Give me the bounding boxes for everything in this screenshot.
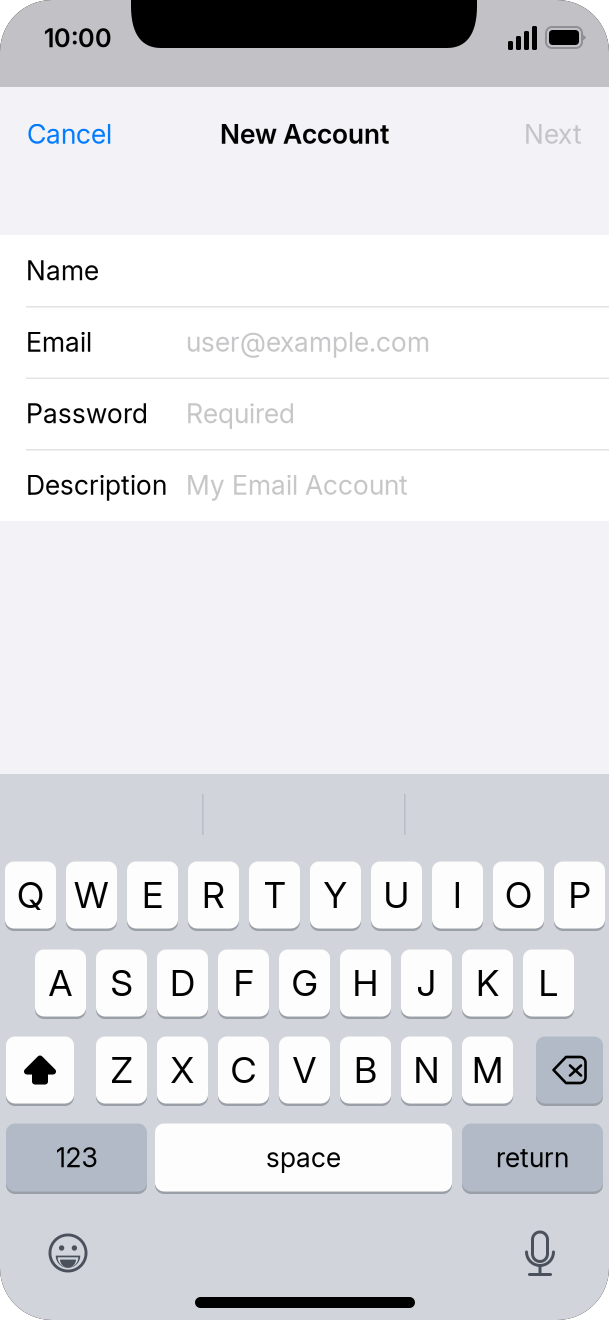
staticText: space xyxy=(266,1141,341,1174)
staticText: Password xyxy=(26,397,148,430)
button[interactable]: X xyxy=(157,1035,208,1105)
staticText: V xyxy=(292,1048,316,1092)
button[interactable]: B xyxy=(340,1035,391,1105)
button[interactable]: 123 xyxy=(6,1122,147,1193)
button[interactable]: E xyxy=(127,860,178,930)
button[interactable]: N xyxy=(401,1035,452,1105)
button[interactable]: F xyxy=(218,948,269,1018)
staticText: Y xyxy=(323,873,347,917)
staticText: user@example.com xyxy=(186,326,430,358)
button[interactable]: Next xyxy=(492,110,582,158)
button[interactable]: V xyxy=(279,1035,330,1105)
staticText: H xyxy=(352,961,378,1005)
staticText: Cancel xyxy=(27,118,112,150)
staticText: Name xyxy=(26,254,99,287)
button[interactable]: R xyxy=(188,860,239,930)
staticText: Email xyxy=(26,326,92,358)
staticText: 123 xyxy=(55,1141,97,1174)
button[interactable]: space xyxy=(155,1122,452,1193)
staticText: New Account xyxy=(220,118,389,150)
staticText: O xyxy=(505,873,532,917)
staticText: R xyxy=(202,873,225,917)
button[interactable]: C xyxy=(218,1035,269,1105)
button[interactable]: Shift xyxy=(6,1035,74,1105)
staticText: G xyxy=(291,961,317,1005)
staticText: W xyxy=(74,873,109,917)
button[interactable]: W xyxy=(66,860,117,930)
button[interactable]: O xyxy=(493,860,544,930)
staticText: Description xyxy=(26,469,167,501)
button[interactable]: D xyxy=(157,948,208,1018)
button[interactable]: L xyxy=(523,948,574,1018)
staticText: M xyxy=(472,1048,503,1092)
button[interactable]: S xyxy=(96,948,147,1018)
staticText: A xyxy=(48,961,72,1005)
staticText: P xyxy=(568,873,590,917)
button[interactable]: P xyxy=(554,860,605,930)
button[interactable]: J xyxy=(401,948,452,1018)
button[interactable]: U xyxy=(371,860,422,930)
button[interactable]: Emoji xyxy=(46,1231,90,1275)
staticText: Q xyxy=(17,873,44,917)
button[interactable]: Delete xyxy=(536,1035,603,1105)
staticText: E xyxy=(142,873,163,917)
staticText: U xyxy=(383,873,409,917)
staticText: T xyxy=(263,873,285,917)
staticText: D xyxy=(170,961,195,1005)
staticText: 10:00 xyxy=(44,23,112,53)
button[interactable]: Q xyxy=(5,860,56,930)
staticText: Required xyxy=(186,397,295,430)
button[interactable]: M xyxy=(462,1035,513,1105)
button[interactable]: Y xyxy=(310,860,361,930)
button[interactable]: A xyxy=(35,948,86,1018)
button[interactable]: Dictation xyxy=(525,1230,555,1276)
staticText: B xyxy=(354,1048,377,1092)
staticText: My Email Account xyxy=(186,469,408,501)
button[interactable]: Z xyxy=(96,1035,147,1105)
staticText: Next xyxy=(524,118,582,150)
staticText: C xyxy=(230,1048,256,1092)
button[interactable]: I xyxy=(432,860,483,930)
button[interactable]: K xyxy=(462,948,513,1018)
staticText: K xyxy=(476,961,499,1005)
staticText: N xyxy=(413,1048,439,1092)
staticText: F xyxy=(233,961,253,1005)
staticText: I xyxy=(453,873,462,917)
button[interactable]: G xyxy=(279,948,330,1018)
button[interactable]: return xyxy=(462,1122,603,1193)
staticText: S xyxy=(110,961,132,1005)
staticText: J xyxy=(416,961,436,1005)
button[interactable]: H xyxy=(340,948,391,1018)
staticText: Z xyxy=(110,1048,132,1092)
button[interactable]: T xyxy=(249,860,300,930)
staticText: return xyxy=(496,1141,569,1174)
staticText: X xyxy=(170,1048,194,1092)
staticText: L xyxy=(538,961,558,1005)
button[interactable]: Cancel xyxy=(27,110,127,158)
